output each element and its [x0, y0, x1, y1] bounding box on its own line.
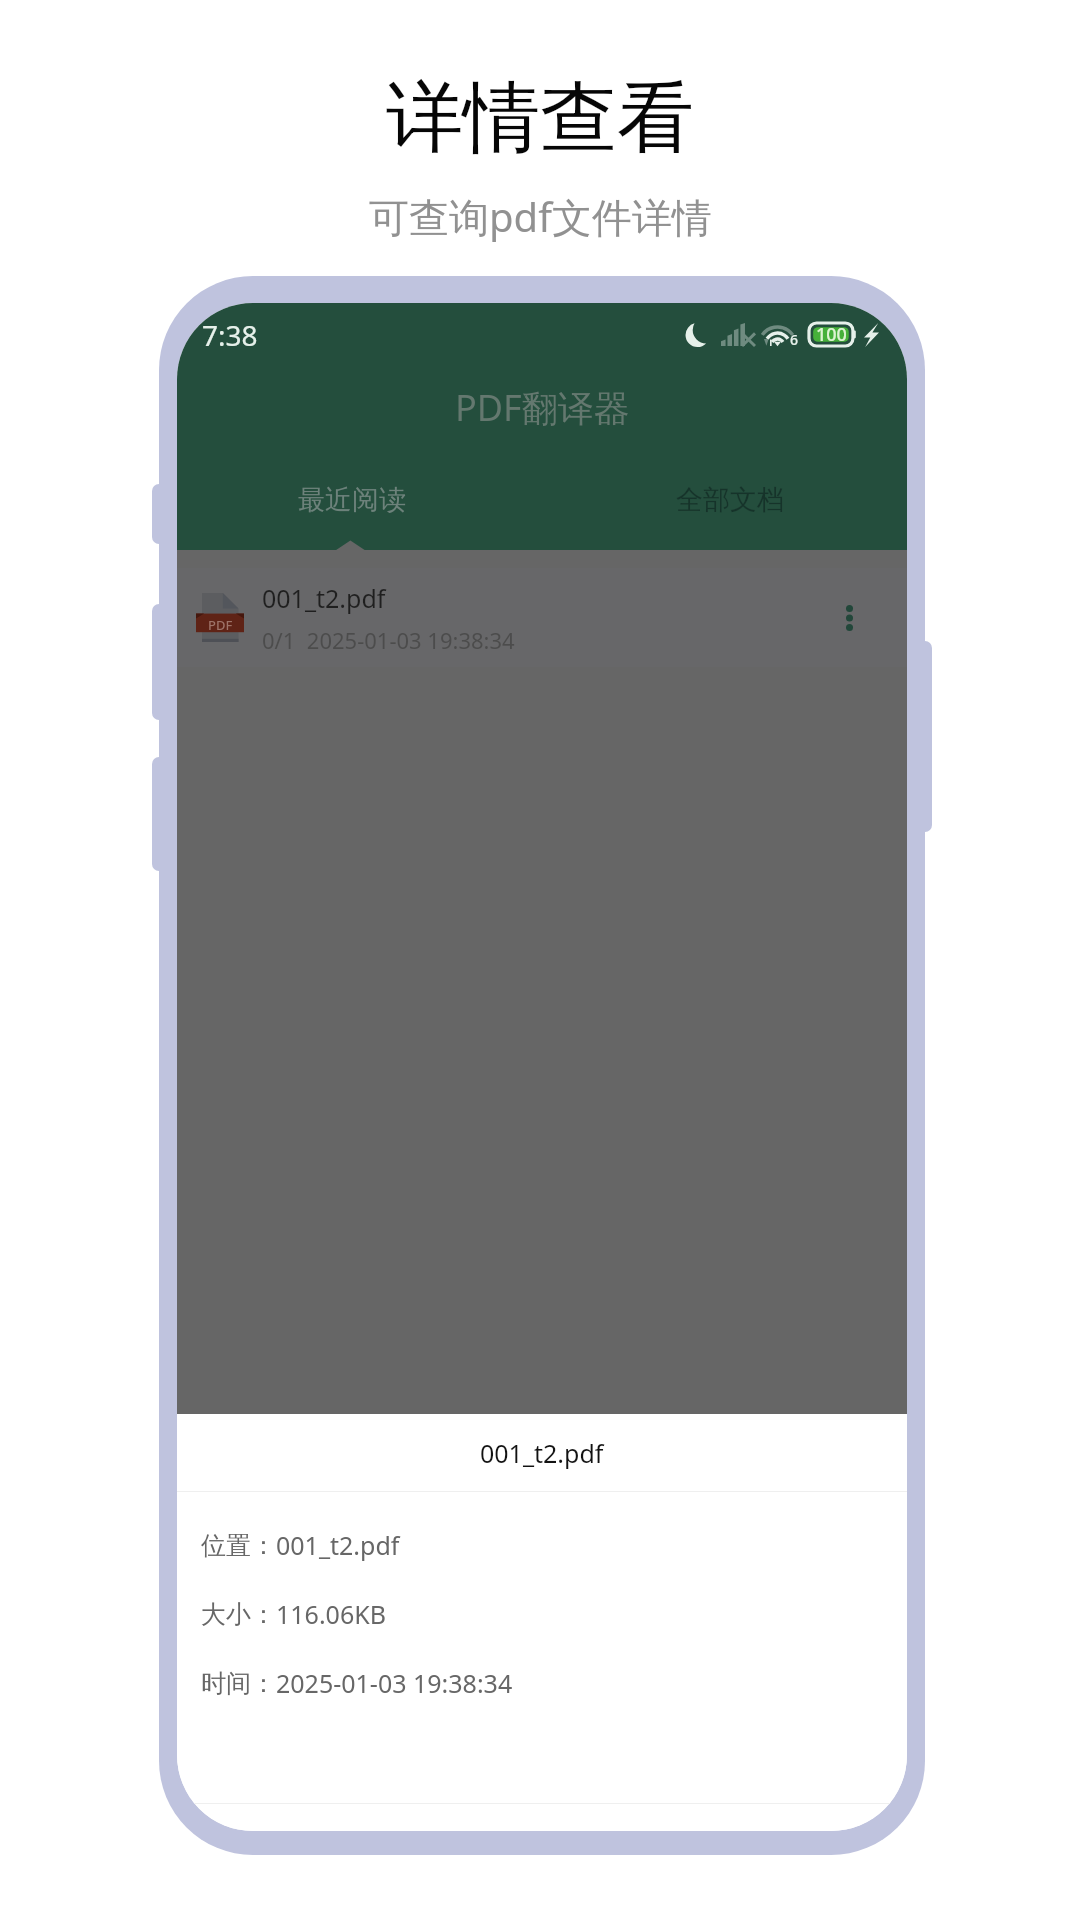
button[interactable]: 全部文档: [542, 449, 907, 550]
staticText: 详情查看: [386, 70, 694, 167]
staticText: PDF: [208, 616, 233, 634]
staticText: 可查询pdf文件详情: [369, 189, 712, 244]
staticText: 大小：: [201, 1599, 276, 1630]
staticText: 116.06KB: [276, 1597, 386, 1631]
staticText: 时间：: [201, 1668, 276, 1699]
button[interactable]: 最近阅读: [177, 449, 542, 550]
staticText: 001_t2.pdf: [262, 581, 386, 615]
staticText: 最近阅读: [298, 483, 406, 517]
staticText: 全部文档: [676, 483, 784, 517]
staticText: 2025-01-03 19:38:34: [276, 1666, 513, 1700]
staticText: 位置：: [201, 1530, 276, 1561]
staticText: 001_t2.pdf: [480, 1436, 604, 1470]
staticText: 001_t2.pdf: [276, 1528, 400, 1562]
staticText: 7:38: [202, 316, 258, 354]
button[interactable]: PDF: [177, 568, 907, 667]
staticText: 100: [816, 322, 847, 347]
staticText: 0/1 2025-01-03 19:38:34: [262, 625, 515, 655]
button[interactable]: Dismiss details: [177, 550, 907, 1414]
staticText: PDF翻译器: [455, 383, 630, 432]
staticText: 6: [790, 330, 799, 349]
button[interactable]: More options: [819, 588, 879, 648]
